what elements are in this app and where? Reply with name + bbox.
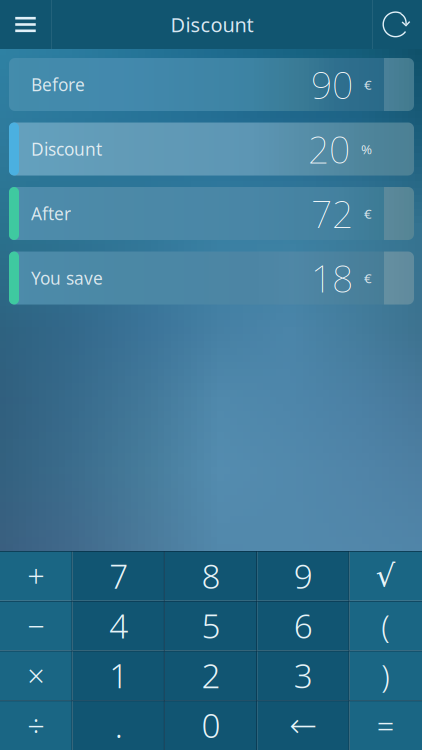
staticText: = — [377, 705, 395, 745]
staticText: . — [115, 703, 123, 747]
staticText: 2 — [201, 653, 220, 697]
staticText: Discount — [170, 11, 253, 38]
button[interactable]: ← — [257, 700, 349, 750]
staticText: After — [31, 202, 71, 225]
staticText: × — [27, 655, 45, 696]
button[interactable]: 8 — [165, 551, 257, 601]
staticText: + — [27, 555, 45, 596]
button[interactable]: + — [0, 551, 72, 601]
staticText: ← — [289, 706, 317, 744]
staticText: € — [364, 76, 372, 93]
staticText: ( — [381, 605, 390, 646]
button[interactable]: × — [0, 650, 72, 700]
staticText: ÷ — [27, 705, 45, 745]
button[interactable]: Before — [9, 58, 414, 111]
button[interactable]: 9 — [257, 551, 349, 601]
button[interactable]: 6 — [257, 601, 349, 651]
button[interactable]: 2 — [165, 650, 257, 700]
staticText: 18 — [311, 253, 353, 303]
staticText: 5 — [201, 603, 220, 648]
staticText: % — [361, 140, 372, 158]
staticText: 4 — [109, 603, 128, 648]
button[interactable]: 5 — [165, 601, 257, 651]
staticText: 3 — [294, 653, 313, 697]
staticText: 90 — [311, 60, 353, 109]
button[interactable]: 1 — [72, 650, 165, 700]
button[interactable]: After — [9, 187, 414, 240]
button[interactable]: You save — [9, 251, 414, 304]
button[interactable]: Reset — [373, 0, 422, 49]
staticText: 6 — [294, 603, 313, 648]
staticText: 72 — [311, 189, 353, 238]
staticText: 0 — [201, 703, 220, 747]
button[interactable]: − — [0, 601, 72, 651]
staticText: 8 — [201, 554, 220, 598]
staticText: € — [364, 269, 372, 287]
staticText: 1 — [109, 653, 128, 697]
button[interactable]: Discount — [9, 122, 414, 175]
button[interactable]: 4 — [72, 601, 165, 651]
button[interactable]: ( — [349, 601, 422, 651]
button[interactable]: 0 — [165, 700, 257, 750]
button[interactable]: = — [349, 700, 422, 750]
button[interactable]: 3 — [257, 650, 349, 700]
staticText: You save — [31, 266, 103, 289]
button[interactable]: . — [72, 700, 165, 750]
staticText: € — [364, 205, 372, 222]
button[interactable]: ) — [349, 650, 422, 700]
staticText: Before — [31, 73, 85, 96]
staticText: 20 — [308, 124, 350, 174]
button[interactable]: √ — [349, 551, 422, 601]
staticText: Discount — [31, 137, 102, 160]
button[interactable]: 7 — [72, 551, 165, 601]
staticText: − — [27, 605, 45, 646]
staticText: 9 — [294, 554, 313, 598]
button[interactable]: ÷ — [0, 700, 72, 750]
staticText: √ — [376, 558, 396, 593]
staticText: ) — [381, 655, 390, 696]
button[interactable]: Menu — [0, 0, 51, 49]
staticText: 7 — [109, 554, 128, 598]
